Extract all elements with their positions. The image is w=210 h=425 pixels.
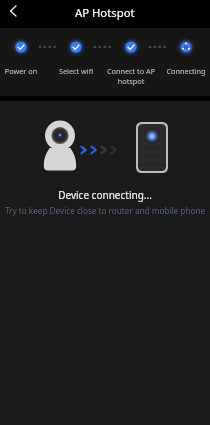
button[interactable]: Connect to AP hotspot [105, 66, 157, 87]
button[interactable]: Power on [0, 66, 47, 76]
staticText: Try to keep Device close to router and m… [0, 205, 210, 216]
button[interactable]: Connecting [160, 66, 210, 76]
staticText: Power on [0, 66, 47, 76]
staticText: Connect to AP hotspot [105, 66, 157, 87]
staticText: Device connecting... [0, 188, 210, 202]
staticText: Connecting [160, 66, 210, 76]
button[interactable]: Back [2, 0, 24, 22]
staticText: AP Hotspot [75, 5, 135, 20]
staticText: Select wifi [50, 66, 102, 76]
button[interactable]: Select wifi [50, 66, 102, 76]
